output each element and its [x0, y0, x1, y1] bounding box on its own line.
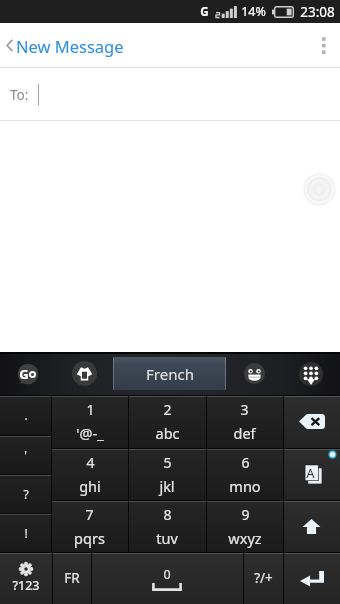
- staticText: ?123: [12, 577, 40, 594]
- button[interactable]: Text input mode: [283, 448, 340, 500]
- button[interactable]: Hide keyboard: [282, 352, 340, 395]
- button[interactable]: !: [0, 513, 51, 552]
- staticText: 23:08: [300, 3, 335, 21]
- staticText: ghi: [79, 476, 101, 496]
- staticText: New Message: [16, 35, 124, 57]
- staticText: 3: [240, 400, 249, 419]
- staticText: ?/+: [254, 569, 273, 587]
- staticText: A: [306, 464, 315, 482]
- staticText: '@-_: [76, 423, 104, 443]
- staticText: ?: [23, 486, 29, 502]
- button[interactable]: Emoji: [226, 352, 282, 395]
- staticText: 9: [241, 505, 250, 524]
- staticText: wxyz: [228, 528, 262, 548]
- staticText: .: [24, 407, 28, 423]
- button[interactable]: 7: [51, 500, 128, 552]
- button[interactable]: FR: [52, 552, 91, 604]
- staticText: 4: [86, 453, 95, 472]
- staticText: mno: [229, 476, 261, 496]
- button[interactable]: ?/+: [243, 552, 283, 604]
- button[interactable]: Backspace: [283, 395, 340, 448]
- button[interactable]: 8: [128, 500, 206, 552]
- staticText: G: [19, 365, 29, 383]
- button[interactable]: 9: [206, 500, 283, 552]
- button[interactable]: Enter: [283, 552, 340, 604]
- staticText: 0: [163, 566, 171, 583]
- button[interactable]: New Message: [0, 23, 340, 68]
- staticText: ': [24, 447, 27, 463]
- staticText: 2: [163, 400, 172, 419]
- button[interactable]: 3: [206, 395, 283, 448]
- staticText: !: [24, 525, 28, 541]
- button[interactable]: .: [0, 395, 51, 435]
- staticText: To:: [10, 86, 29, 104]
- staticText: French: [146, 364, 194, 384]
- button[interactable]: Shift: [283, 500, 340, 552]
- button[interactable]: 5: [128, 448, 206, 500]
- button[interactable]: 6: [206, 448, 283, 500]
- staticText: pqrs: [74, 528, 105, 548]
- staticText: tuv: [156, 528, 178, 548]
- staticText: def: [233, 423, 256, 443]
- staticText: jkl: [159, 476, 175, 496]
- staticText: FR: [64, 569, 80, 587]
- staticText: 8: [163, 505, 172, 524]
- staticText: 5: [163, 453, 172, 472]
- button[interactable]: Symbols: [0, 552, 52, 604]
- button[interactable]: French: [113, 357, 226, 390]
- button[interactable]: Google search: [0, 352, 55, 395]
- staticText: abc: [155, 423, 180, 443]
- staticText: 14%: [241, 3, 266, 20]
- button[interactable]: Space: [91, 552, 243, 604]
- staticText: 7: [85, 505, 94, 524]
- staticText: 1: [86, 400, 95, 419]
- button[interactable]: More options: [308, 23, 340, 68]
- button[interactable]: 1: [51, 395, 128, 448]
- button[interactable]: 4: [51, 448, 128, 500]
- button[interactable]: ?: [0, 474, 51, 513]
- staticText: 6: [241, 453, 250, 472]
- button[interactable]: 2: [128, 395, 206, 448]
- button[interactable]: ': [0, 435, 51, 474]
- staticText: G: [200, 4, 209, 20]
- button[interactable]: Theme: [55, 352, 113, 395]
